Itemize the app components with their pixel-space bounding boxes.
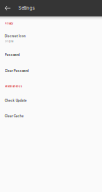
staticText: Original: [5, 40, 14, 43]
button[interactable]: Back: [0, 0, 18, 17]
staticText: Privacy: [5, 22, 13, 25]
staticText: Miscellaneous: [5, 85, 22, 88]
button[interactable]: Discreet Icon: [0, 25, 102, 43]
button[interactable]: Check Update: [0, 88, 102, 102]
staticText: Clear Password: [5, 69, 29, 73]
staticText: Clear Cache: [5, 114, 24, 118]
staticText: Settings: [18, 6, 34, 11]
staticText: Discreet Icon: [5, 34, 26, 38]
staticText: Check Update: [5, 99, 27, 102]
button[interactable]: Clear Cache: [0, 102, 102, 118]
button[interactable]: Password: [0, 43, 102, 57]
staticText: Password: [5, 53, 20, 57]
button[interactable]: Clear Password: [0, 57, 102, 73]
